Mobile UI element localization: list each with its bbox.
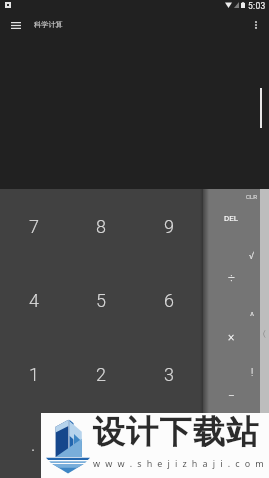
staticText: 2	[96, 364, 106, 385]
button[interactable]: (	[260, 325, 268, 341]
staticText: 5	[96, 290, 106, 311]
button[interactable]: ÷	[203, 248, 260, 307]
staticText: −	[228, 389, 235, 403]
button[interactable]: −	[203, 366, 260, 425]
staticText: 6	[164, 290, 174, 311]
button[interactable]: 1	[0, 337, 67, 411]
staticText: 4	[29, 290, 39, 311]
button[interactable]: More options	[244, 13, 268, 37]
staticText: ×	[228, 330, 235, 344]
staticText: 科学计算	[34, 20, 63, 29]
staticText: DEL	[224, 214, 239, 223]
button[interactable]: 7	[0, 189, 67, 263]
button[interactable]: ×	[203, 307, 260, 366]
staticText: 7	[29, 216, 39, 237]
staticText: √	[249, 250, 255, 262]
button[interactable]: ^	[240, 305, 264, 329]
button[interactable]: CLR	[240, 184, 264, 208]
staticText: 1	[29, 364, 39, 385]
staticText: (	[263, 329, 266, 338]
button[interactable]: DEL	[203, 189, 260, 248]
button[interactable]: =	[135, 411, 203, 478]
button[interactable]: !	[240, 361, 264, 385]
staticText: 0	[96, 434, 106, 455]
button[interactable]: 9	[135, 189, 203, 263]
button[interactable]: 4	[0, 263, 67, 337]
staticText: 3	[164, 364, 174, 385]
button[interactable]: Navigation menu	[4, 13, 28, 37]
staticText: ^	[250, 311, 255, 323]
button[interactable]: √	[240, 244, 264, 268]
button[interactable]: 5	[67, 263, 135, 337]
button[interactable]: .	[0, 411, 67, 478]
button[interactable]: 2	[67, 337, 135, 411]
staticText: !	[251, 367, 254, 379]
staticText: ÷	[228, 271, 235, 285]
button[interactable]: 0	[67, 411, 135, 478]
staticText: CLR	[246, 193, 258, 200]
staticText: 设计下载站	[92, 412, 259, 452]
staticText: .	[31, 434, 36, 455]
staticText: =	[164, 434, 174, 455]
button[interactable]: 3	[135, 337, 203, 411]
staticText: w w w . s h e j i z h a j i . c o m	[93, 457, 266, 469]
button[interactable]: 6	[135, 263, 203, 337]
button[interactable]: 8	[67, 189, 135, 263]
staticText: 8	[96, 216, 106, 237]
staticText: 9	[164, 216, 174, 237]
staticText: 5:03	[248, 1, 266, 11]
